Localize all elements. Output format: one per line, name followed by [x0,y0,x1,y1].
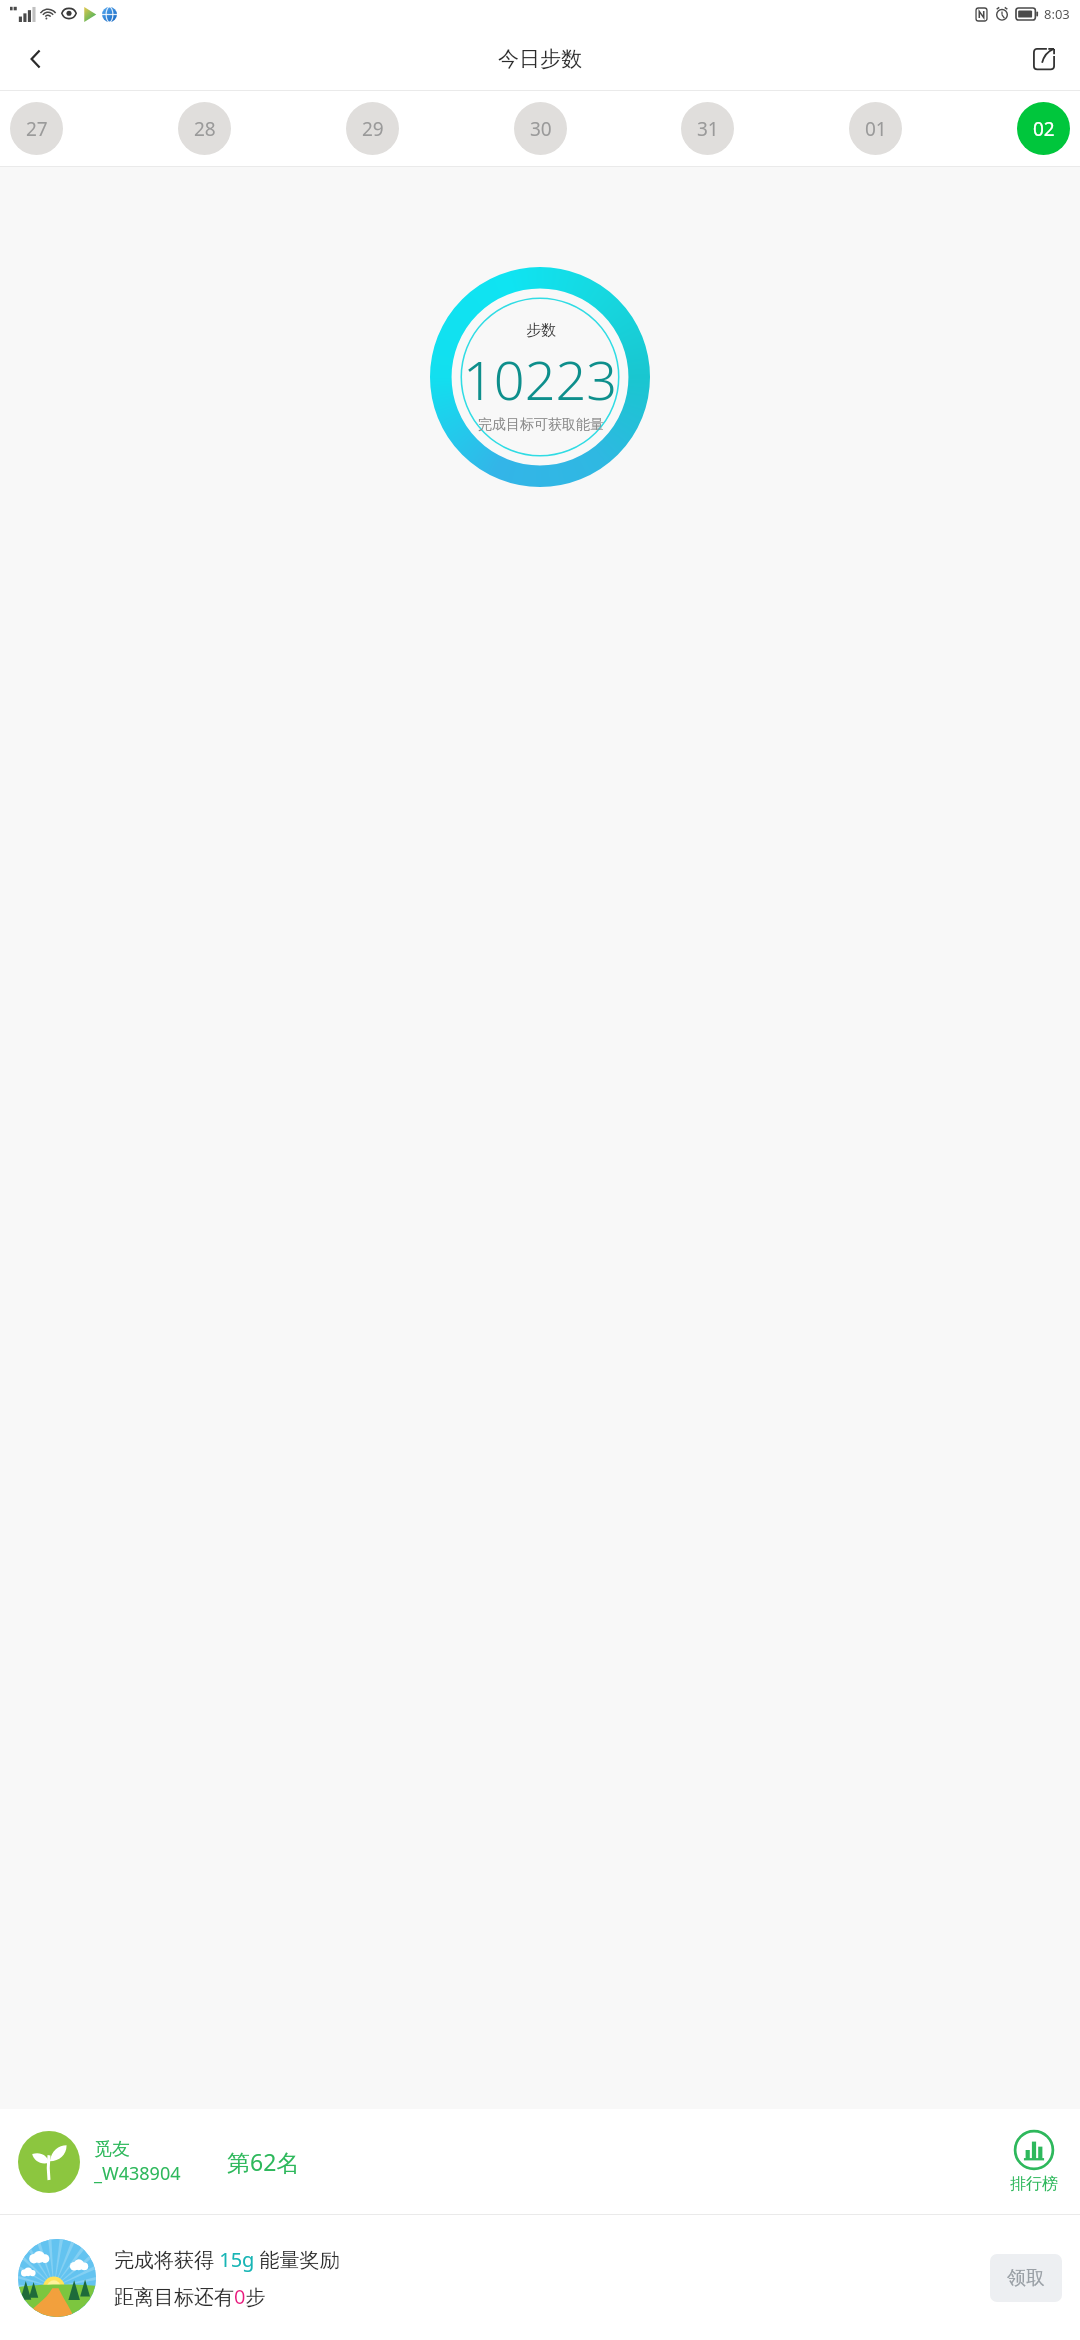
staticText: 02 [1033,116,1055,142]
button[interactable]: 27 [10,102,63,155]
staticText: 今日步数 [498,46,582,72]
staticText: 完成将获得 15g 能量奖励 [114,2246,340,2273]
staticText: 领取 [1007,2266,1045,2290]
button[interactable]: 返回 [14,37,58,81]
staticText: 01 [865,116,887,142]
staticText: 28 [194,116,216,142]
staticText: 完成目标可获取能量 [478,416,604,434]
button[interactable]: 领取 [990,2254,1062,2302]
button[interactable]: 29 [346,102,399,155]
button[interactable]: 02 [1017,102,1070,155]
staticText: _W438904 [94,2161,181,2186]
button[interactable]: 排行榜 [1006,2125,1062,2198]
button[interactable]: 28 [178,102,231,155]
staticText: 觅友 [94,2138,130,2161]
staticText: 8:03 [1044,5,1070,23]
staticText: 排行榜 [1010,2174,1058,2194]
button[interactable]: 01 [849,102,902,155]
staticText: 10223 [463,342,618,416]
staticText: 步数 [526,321,556,340]
button[interactable]: 分享 [1022,37,1066,81]
button[interactable]: 觅友 [0,2109,1080,2214]
staticText: 距离目标还有0步 [114,2283,266,2310]
staticText: 第62名 [227,2146,300,2177]
staticText: 30 [530,116,552,142]
button[interactable]: 31 [681,102,734,155]
staticText: 27 [26,116,48,142]
staticText: 31 [697,116,719,142]
staticText: 29 [362,116,384,142]
button[interactable]: 30 [514,102,567,155]
